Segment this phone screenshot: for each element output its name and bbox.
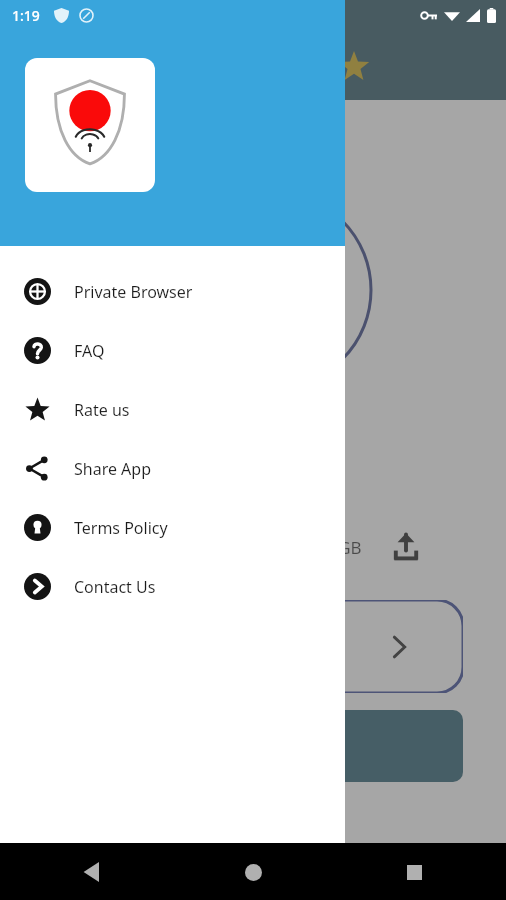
button[interactable] bbox=[25, 58, 155, 192]
button[interactable]: Upload bbox=[384, 525, 428, 569]
button[interactable]: Favourite bbox=[334, 46, 374, 86]
staticText: Share App bbox=[74, 458, 152, 480]
staticText: Private Browser bbox=[74, 281, 193, 303]
staticText: Rate us bbox=[74, 399, 130, 421]
button[interactable]: Home bbox=[231, 850, 275, 894]
button[interactable]: Contact Us bbox=[0, 557, 345, 616]
button[interactable]: Private Browser bbox=[0, 262, 345, 321]
button[interactable]: Recent apps bbox=[392, 850, 436, 894]
staticText: Terms Policy bbox=[74, 517, 168, 539]
button[interactable]: Rate us bbox=[0, 380, 345, 439]
staticText: FAQ bbox=[74, 340, 105, 362]
staticText: Contact Us bbox=[74, 576, 156, 598]
button[interactable]: Connect to Servers bbox=[45, 710, 463, 782]
staticText: 1:19 bbox=[12, 6, 40, 25]
button[interactable]: Terms Policy bbox=[0, 498, 345, 557]
button[interactable]: Back bbox=[70, 850, 114, 894]
staticText: 24.5 GB bbox=[300, 536, 362, 559]
button[interactable] bbox=[45, 600, 463, 693]
button[interactable]: FAQ bbox=[0, 321, 345, 380]
button[interactable]: Share App bbox=[0, 439, 345, 498]
